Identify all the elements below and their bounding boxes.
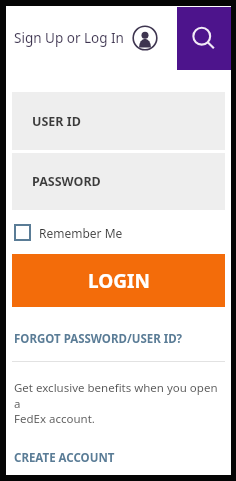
button[interactable]: Remember Me [14, 224, 123, 241]
button[interactable]: USER ID [12, 92, 225, 150]
button[interactable]: Search [177, 7, 231, 70]
staticText: CREATE ACCOUNT [14, 450, 115, 466]
button[interactable]: FORGOT PASSWORD/USER ID? [6, 329, 231, 361]
other: Account [132, 25, 158, 51]
button[interactable]: PASSWORD [12, 153, 225, 210]
staticText: LOGIN [88, 268, 150, 294]
button[interactable]: Sign Up or Log In [14, 25, 158, 51]
staticText: FORGOT PASSWORD/USER ID? [14, 331, 183, 347]
button[interactable]: LOGIN [12, 254, 225, 307]
staticText: Remember Me [39, 225, 123, 241]
staticText: Sign Up or Log In [14, 29, 124, 47]
staticText: Get exclusive benefits when you open a F… [14, 380, 219, 426]
staticText: USER ID [32, 113, 81, 130]
button[interactable]: CREATE ACCOUNT [6, 448, 231, 472]
staticText: PASSWORD [32, 173, 101, 190]
